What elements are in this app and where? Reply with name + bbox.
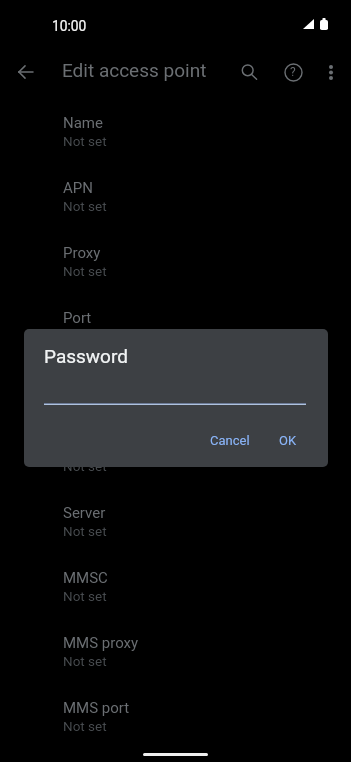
button[interactable]: Navigate up xyxy=(1,48,49,96)
staticText: Not set xyxy=(63,263,107,279)
button[interactable]: MMSC xyxy=(0,556,351,621)
button[interactable]: More options xyxy=(309,50,351,94)
staticText: Cancel xyxy=(210,433,250,448)
staticText: Password xyxy=(44,345,128,367)
button[interactable]: Password xyxy=(0,426,351,491)
staticText: APN xyxy=(63,179,93,197)
button[interactable]: Username xyxy=(0,361,351,426)
button[interactable]: Cancel xyxy=(202,425,258,453)
staticText: Server xyxy=(63,504,106,522)
button[interactable]: MMS proxy xyxy=(0,621,351,686)
button[interactable]: APN xyxy=(0,166,351,231)
staticText: Not set xyxy=(63,588,107,604)
staticText: Not set xyxy=(63,133,107,149)
button[interactable]: Port xyxy=(0,296,351,361)
staticText: Proxy xyxy=(63,244,101,262)
staticText: Not set xyxy=(63,458,107,474)
button[interactable]: MMS port xyxy=(0,686,351,751)
staticText: OK xyxy=(279,433,297,448)
button[interactable]: Server xyxy=(0,491,351,556)
staticText: Not set xyxy=(63,523,107,539)
button[interactable]: Help xyxy=(271,50,315,94)
staticText: MMS port xyxy=(63,699,130,717)
staticText: Name xyxy=(63,114,103,132)
staticText: 10:00 xyxy=(52,18,87,34)
staticText: MMSC xyxy=(63,569,108,587)
button[interactable]: Name xyxy=(0,101,351,166)
staticText: Not set xyxy=(63,393,107,409)
button[interactable]: Proxy xyxy=(0,231,351,296)
staticText: Not set xyxy=(63,198,107,214)
button[interactable]: OK xyxy=(271,425,305,453)
button[interactable]: Search xyxy=(228,50,272,94)
staticText: MMS proxy xyxy=(63,634,139,652)
staticText: Not set xyxy=(63,328,107,344)
staticText: ? xyxy=(290,65,296,79)
staticText: Port xyxy=(63,309,92,327)
staticText: Not set xyxy=(63,718,107,734)
staticText: Not set xyxy=(63,653,107,669)
staticText: Edit access point xyxy=(62,59,207,81)
